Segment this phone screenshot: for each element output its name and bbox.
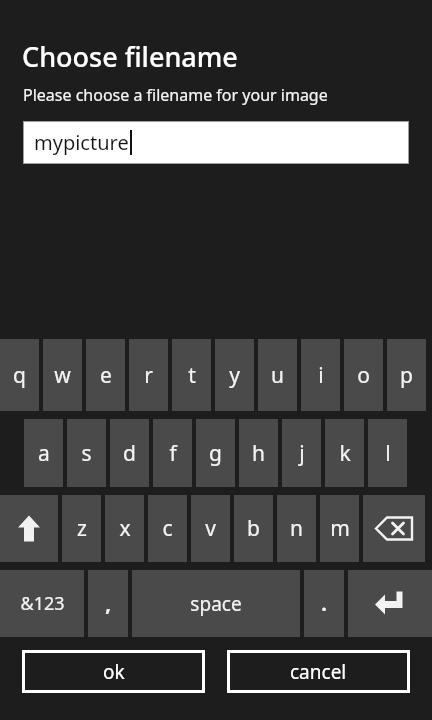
button[interactable]: x [105,495,144,562]
button[interactable]: , [88,570,128,637]
staticText: y [229,361,240,390]
staticText: z [77,514,87,543]
button[interactable]: k [325,419,364,487]
staticText: o [357,361,370,390]
button[interactable]: c [148,495,187,562]
button[interactable]: g [196,419,235,487]
button[interactable]: a [24,419,63,487]
staticText: &123 [20,591,65,616]
staticText: i [318,361,324,390]
button[interactable]: y [215,339,254,411]
button[interactable]: h [239,419,278,487]
staticText: m [330,514,350,543]
button[interactable]: Enter [348,570,432,637]
button[interactable]: ok [22,650,205,693]
staticText: h [252,439,265,468]
button[interactable]: i [301,339,340,411]
button[interactable]: j [282,419,321,487]
staticText: k [339,439,351,468]
button[interactable]: z [62,495,101,562]
staticText: . [321,590,327,617]
staticText: p [400,361,413,390]
button[interactable]: l [368,419,407,487]
button[interactable]: &123 [0,570,84,637]
staticText: j [299,439,305,468]
staticText: x [119,514,131,543]
button[interactable]: t [172,339,211,411]
staticText: u [271,361,284,390]
staticText: a [38,439,50,468]
button[interactable]: w [43,339,82,411]
button[interactable]: Backspace [363,495,425,562]
button[interactable]: . [304,570,344,637]
button[interactable]: f [153,419,192,487]
button[interactable]: o [344,339,383,411]
staticText: Choose filename [22,38,238,75]
button[interactable]: q [0,339,39,411]
staticText: space [190,591,242,617]
button[interactable]: space [132,570,300,637]
staticText: w [54,361,71,390]
button[interactable]: p [387,339,426,411]
button[interactable]: mypicture [24,122,408,163]
staticText: n [290,514,303,543]
button[interactable]: e [86,339,125,411]
button[interactable]: d [110,419,149,487]
staticText: b [247,514,260,543]
staticText: l [385,439,391,468]
staticText: ok [103,659,125,685]
button[interactable]: Shift [0,495,58,562]
staticText: f [169,439,177,468]
staticText: r [144,361,153,390]
staticText: s [81,439,92,468]
button[interactable]: u [258,339,297,411]
button[interactable]: r [129,339,168,411]
button[interactable]: b [234,495,273,562]
button[interactable]: s [67,419,106,487]
staticText: g [209,439,222,468]
staticText: t [188,361,196,390]
staticText: mypicture [34,129,129,156]
staticText: Please choose a filename for your image [23,84,328,106]
staticText: v [205,514,216,543]
staticText: , [105,590,111,617]
staticText: e [100,361,112,390]
staticText: cancel [290,659,347,685]
button[interactable]: cancel [227,650,410,693]
staticText: q [13,361,26,390]
button[interactable]: v [191,495,230,562]
staticText: c [162,514,173,543]
staticText: d [123,439,136,468]
button[interactable]: m [320,495,359,562]
button[interactable]: n [277,495,316,562]
